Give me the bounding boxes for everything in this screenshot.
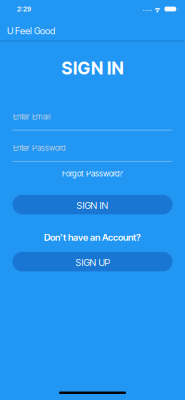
staticText: Enter Password [13,143,65,153]
staticText: 2:29 [17,5,31,13]
staticText: U Feel Good [7,25,55,36]
staticText: Enter Email [13,112,51,121]
staticText: SIGN UP [75,257,109,268]
button[interactable]: SIGN IN [12,195,172,214]
button[interactable]: Forgot Password? [62,169,123,178]
staticText: Don't have an Account? [44,232,141,243]
staticText: SIGN IN [76,200,108,211]
staticText: Forgot Password? [62,169,123,178]
button[interactable]: SIGN UP [12,252,172,271]
button[interactable]: Enter Password [12,143,172,162]
staticText: SIGN IN [61,58,123,78]
button[interactable]: Enter Email [12,112,172,131]
